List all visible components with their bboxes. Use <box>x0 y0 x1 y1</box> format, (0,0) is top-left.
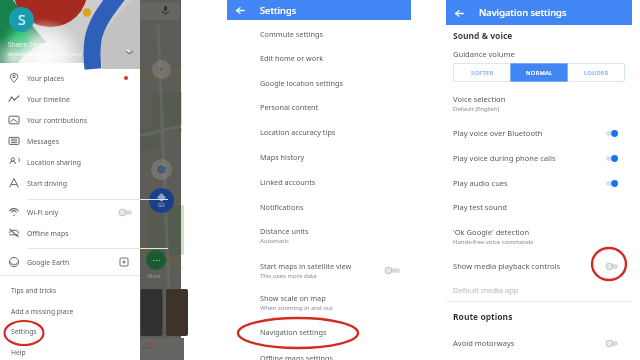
button[interactable]: Messages <box>0 131 140 151</box>
button[interactable]: Start driving <box>0 173 140 193</box>
button[interactable]: Play test sound <box>446 197 632 217</box>
staticText: Voice selection <box>453 94 506 104</box>
staticText: Default (English) <box>453 105 500 113</box>
staticText: SOFTER <box>471 69 494 77</box>
staticText: NORMAL <box>526 69 553 77</box>
staticText: Default media app <box>453 285 519 295</box>
button[interactable]: Play voice during phone calls <box>446 148 632 168</box>
button[interactable]: Offline maps <box>0 223 140 243</box>
button[interactable]: Linked accounts <box>227 172 411 192</box>
button[interactable]: Account <box>9 7 34 32</box>
staticText: Your timeline <box>27 95 70 104</box>
staticText: Show scale on map <box>260 293 326 303</box>
staticText: Navigation settings <box>260 327 327 337</box>
button[interactable]: Compass <box>152 60 171 79</box>
button[interactable]: Add a missing place <box>0 301 140 321</box>
staticText: Help <box>11 348 26 357</box>
staticText: Sound & voice <box>453 30 513 42</box>
staticText: Guidance volume <box>453 49 515 59</box>
staticText: Navigation settings <box>479 6 567 19</box>
staticText: Play test sound <box>453 202 507 212</box>
staticText: Personal content <box>260 102 319 112</box>
staticText: Shane Symms <box>8 40 52 49</box>
staticText: 'Ok Google' detection <box>453 227 530 237</box>
button[interactable]: Offline maps settings <box>227 348 411 360</box>
staticText: Google location settings <box>260 78 344 88</box>
staticText: Offline maps settings <box>260 353 334 360</box>
staticText: Add a missing place <box>11 307 74 316</box>
button[interactable]: Your contributions <box>0 110 140 130</box>
button[interactable]: Default media app <box>446 280 632 300</box>
button[interactable]: LOUDER <box>568 63 625 82</box>
button[interactable]: Personal content <box>227 97 411 117</box>
button[interactable]: Settings <box>0 321 140 341</box>
button[interactable]: Navigation settings <box>227 322 411 342</box>
button[interactable]: NORMAL <box>511 63 568 82</box>
staticText: Wi-Fi only <box>27 208 59 217</box>
staticText: Avoid motorways <box>453 338 515 348</box>
staticText: Hands-free voice commands <box>453 238 534 246</box>
button[interactable]: Commute settings <box>227 24 411 44</box>
button[interactable]: More <box>146 250 166 270</box>
staticText: Location accuracy tips <box>260 127 336 137</box>
staticText: Offline maps <box>27 229 69 238</box>
staticText: Distance units <box>260 226 309 236</box>
staticText: Commute settings <box>260 29 324 39</box>
button[interactable]: Maps history <box>227 147 411 167</box>
staticText: shane.symms@gmail.com <box>8 50 82 58</box>
button[interactable]: Edit home or work <box>227 48 411 68</box>
button[interactable]: Avoid motorways <box>446 333 632 353</box>
staticText: Notifications <box>260 202 304 212</box>
button[interactable]: Google location settings <box>227 73 411 93</box>
button[interactable]: Help <box>0 342 140 360</box>
staticText: Edit home or work <box>260 53 324 63</box>
staticText: When zooming in and out <box>260 304 333 312</box>
staticText: LOUDER <box>584 69 609 77</box>
button[interactable]: Your timeline <box>0 89 140 109</box>
staticText: More <box>148 273 161 280</box>
staticText: Maps history <box>260 152 305 162</box>
staticText: Tips and tricks <box>11 286 57 295</box>
button[interactable]: Location sharing <box>0 152 140 172</box>
button[interactable]: Location accuracy tips <box>227 122 411 142</box>
staticText: Your places <box>27 74 64 83</box>
staticText: Show media playback controls <box>453 261 561 271</box>
staticText: This uses more data <box>260 272 317 280</box>
button[interactable]: Wi-Fi only <box>0 202 140 222</box>
staticText: Start driving <box>27 179 67 188</box>
button[interactable]: Show scale on map <box>227 292 411 312</box>
button[interactable]: Your places <box>0 68 140 88</box>
staticText: Automatic <box>260 237 289 245</box>
staticText: Start maps in satellite view <box>260 261 352 271</box>
staticText: Google Earth <box>27 258 70 267</box>
staticText: Location sharing <box>27 158 81 167</box>
button[interactable]: Back <box>450 4 468 22</box>
staticText: Linked accounts <box>260 177 316 187</box>
staticText: Play audio cues <box>453 178 508 188</box>
staticText: Settings <box>260 4 297 17</box>
staticText: Play voice over Bluetooth <box>453 128 543 138</box>
button[interactable]: Play voice over Bluetooth <box>446 123 632 143</box>
button[interactable]: Back <box>231 1 249 19</box>
button[interactable]: My location <box>151 159 172 180</box>
button[interactable]: Start maps in satellite view <box>227 260 411 280</box>
button[interactable]: Notifications <box>227 197 411 217</box>
staticText: Your contributions <box>27 116 87 125</box>
button[interactable]: Show media playback controls <box>446 256 632 276</box>
staticText: S <box>18 10 26 29</box>
button[interactable]: GO <box>149 188 174 213</box>
staticText: Settings <box>11 327 37 336</box>
button[interactable]: Tips and tricks <box>0 280 140 300</box>
button[interactable]: SOFTER <box>453 63 511 82</box>
button[interactable]: Play audio cues <box>446 173 632 193</box>
staticText: Route options <box>453 311 513 323</box>
button[interactable]: Distance units <box>227 225 411 245</box>
staticText: Play voice during phone calls <box>453 153 556 163</box>
button[interactable]: Google Earth <box>0 252 140 272</box>
staticText: GO <box>158 202 165 208</box>
staticText: Messages <box>27 137 60 146</box>
